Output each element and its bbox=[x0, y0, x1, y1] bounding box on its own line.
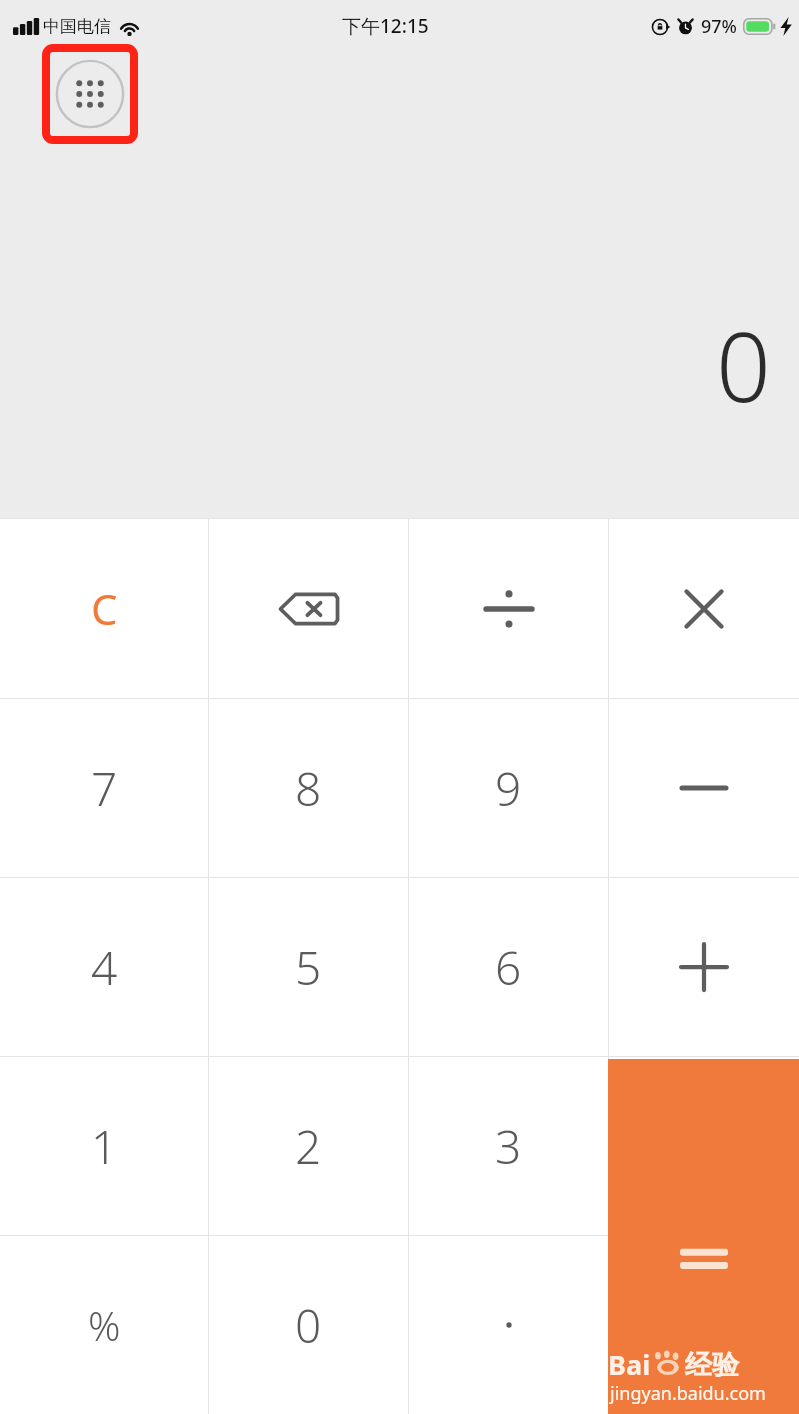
button[interactable]: Equals bbox=[608, 1059, 799, 1414]
staticText: 2 bbox=[295, 1115, 322, 1178]
button[interactable] bbox=[609, 519, 799, 698]
staticText: 97% bbox=[701, 14, 737, 39]
staticText: 下午12:15 bbox=[342, 13, 429, 39]
staticText: 经验 bbox=[685, 1348, 739, 1382]
button[interactable]: % bbox=[0, 1236, 208, 1414]
button[interactable]: Apps bbox=[42, 44, 138, 144]
staticText: Bai bbox=[608, 1346, 651, 1383]
staticText: % bbox=[88, 1298, 121, 1352]
button[interactable]: 7 bbox=[0, 699, 208, 877]
staticText: 0 bbox=[295, 1294, 322, 1357]
button[interactable]: 4 bbox=[0, 878, 208, 1056]
staticText: 1 bbox=[91, 1115, 118, 1178]
button[interactable] bbox=[409, 1236, 608, 1414]
staticText: C bbox=[91, 580, 118, 637]
staticText: 0 bbox=[716, 299, 771, 430]
button[interactable]: 3 bbox=[409, 1057, 608, 1235]
button[interactable] bbox=[209, 519, 408, 698]
button[interactable]: 9 bbox=[409, 699, 608, 877]
button[interactable] bbox=[609, 878, 799, 1056]
button[interactable]: 8 bbox=[209, 699, 408, 877]
button[interactable]: 5 bbox=[209, 878, 408, 1056]
button[interactable]: C bbox=[0, 519, 208, 698]
button[interactable]: 6 bbox=[409, 878, 608, 1056]
staticText: 7 bbox=[91, 757, 118, 820]
staticText: 9 bbox=[495, 757, 522, 820]
staticText: 中国电信 bbox=[43, 16, 111, 37]
button[interactable]: 2 bbox=[209, 1057, 408, 1235]
staticText: 4 bbox=[91, 936, 118, 999]
button[interactable]: 1 bbox=[0, 1057, 208, 1235]
staticText: 6 bbox=[495, 936, 522, 999]
staticText: 8 bbox=[295, 757, 322, 820]
staticText: jingyan.baidu.com bbox=[610, 1381, 766, 1406]
button[interactable] bbox=[409, 519, 608, 698]
staticText: 3 bbox=[495, 1115, 522, 1178]
staticText: 5 bbox=[295, 936, 322, 999]
button[interactable] bbox=[609, 699, 799, 877]
button[interactable]: 0 bbox=[209, 1236, 408, 1414]
